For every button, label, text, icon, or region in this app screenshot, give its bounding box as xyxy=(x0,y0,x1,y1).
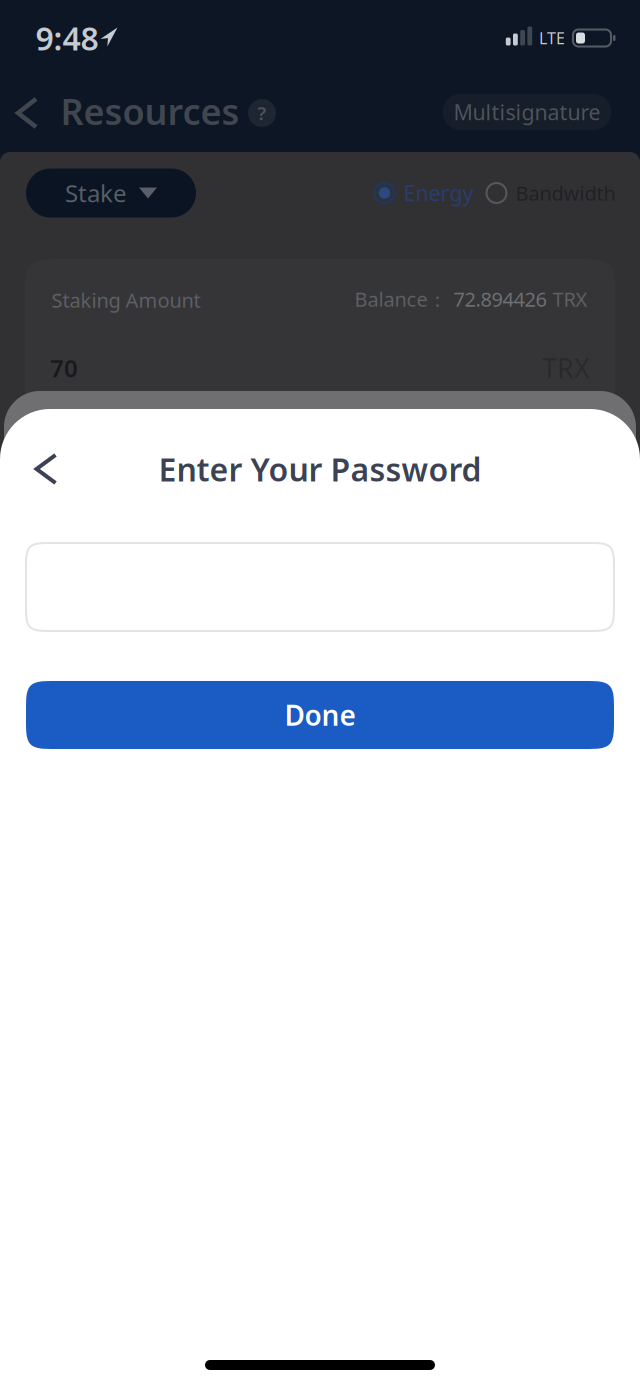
staticText: Multisignature xyxy=(453,98,600,126)
staticText: Bandwidth xyxy=(515,180,615,206)
staticText: 70 xyxy=(50,352,78,384)
button[interactable]: Help xyxy=(248,99,276,127)
staticText: Resources xyxy=(60,87,239,135)
staticText: Stake xyxy=(65,177,127,209)
button[interactable]: Done xyxy=(26,681,614,749)
staticText: TRX xyxy=(542,350,590,386)
button[interactable]: Bandwidth xyxy=(486,180,615,206)
staticText: Balance： xyxy=(354,286,447,312)
button[interactable]: Multisignature xyxy=(442,94,611,130)
button[interactable]: Energy xyxy=(374,179,473,207)
button[interactable]: Back xyxy=(28,447,63,491)
staticText: 72.894426 xyxy=(453,286,546,312)
button[interactable]: Back xyxy=(10,91,44,135)
staticText: LTE xyxy=(539,27,565,49)
staticText: Energy xyxy=(403,179,473,207)
staticText: Done xyxy=(284,696,355,734)
staticText: Enter Your Password xyxy=(158,448,481,490)
button[interactable]: Stake xyxy=(26,168,196,217)
staticText: ? xyxy=(257,101,266,125)
button[interactable]: Password xyxy=(26,543,614,631)
staticText: 9:48 xyxy=(35,17,98,59)
staticText: TRX xyxy=(552,286,587,312)
staticText: Staking Amount xyxy=(51,287,200,313)
